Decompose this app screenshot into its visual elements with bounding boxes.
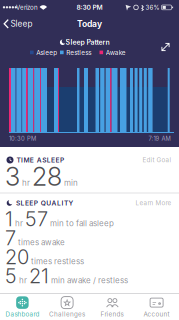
staticText: TIME ASLEEP: [16, 156, 64, 164]
staticText: Dashboard: [5, 310, 39, 318]
staticText: SLEEP QUALITY: [16, 199, 73, 207]
staticText: Challenges: [49, 310, 85, 318]
staticText: hr: [22, 178, 30, 188]
staticText: 1: [5, 207, 13, 231]
staticText: 10:30 PM: [9, 135, 36, 142]
staticText: Awake: [106, 49, 126, 56]
staticText: 5: [5, 264, 17, 288]
staticText: 7:19 AM: [148, 135, 170, 142]
staticText: Account: [144, 310, 170, 318]
staticText: min: [64, 178, 78, 188]
staticText: hr: [15, 218, 23, 228]
staticText: Restless: [66, 49, 91, 56]
staticText: Edit Goal: [142, 156, 171, 164]
staticText: Sleep Pattern: [65, 38, 109, 46]
staticText: Asleep: [36, 49, 57, 56]
staticText: Verizon: [16, 4, 38, 11]
staticText: 8:30 PM: [76, 3, 102, 11]
staticText: times restless: [31, 256, 84, 266]
staticText: hr: [19, 275, 27, 285]
staticText: Learn More: [135, 199, 171, 207]
staticText: 21: [29, 264, 49, 288]
staticText: 36%: [145, 4, 159, 11]
staticText: min awake / restless: [51, 275, 128, 285]
staticText: 3: [5, 161, 20, 192]
staticText: 57: [25, 207, 48, 231]
staticText: 28: [32, 161, 62, 192]
staticText: min to fall asleep: [50, 218, 114, 228]
staticText: 7: [5, 226, 16, 250]
staticText: times awake: [18, 237, 65, 247]
staticText: Today: [77, 19, 102, 29]
staticText: 20: [5, 245, 29, 269]
staticText: Friends: [100, 310, 123, 318]
staticText: Sleep: [10, 19, 32, 29]
